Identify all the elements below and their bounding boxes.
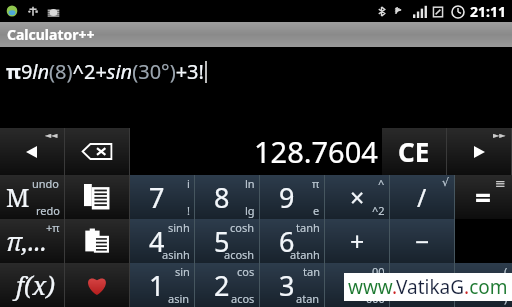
staticText: e (313, 203, 320, 218)
staticText: asin (168, 291, 190, 306)
button[interactable]: − (390, 219, 454, 263)
staticText: ! (187, 203, 190, 218)
button[interactable]: . (390, 263, 454, 307)
button[interactable]: + (325, 219, 389, 263)
button[interactable]: Backspace (65, 128, 129, 175)
staticText: ≡ (495, 176, 506, 191)
staticText: undo (32, 176, 60, 191)
button[interactable]: 4 (130, 219, 194, 263)
staticText: 2 (214, 267, 230, 304)
staticText: Calculator++ (7, 25, 95, 44)
staticText: 3 (279, 267, 295, 304)
staticText: − (415, 224, 430, 258)
staticText: tan (303, 264, 320, 279)
button[interactable]: = (455, 175, 512, 219)
staticText: ►► (493, 131, 506, 140)
button[interactable]: 0 (325, 263, 389, 307)
staticText: 4 (149, 223, 165, 260)
staticText: × (350, 180, 365, 214)
staticText: redo (36, 203, 60, 218)
staticText: 7 (149, 179, 165, 216)
button[interactable]: f(x) (0, 263, 64, 307)
button[interactable]: 3 (260, 263, 324, 307)
button[interactable]: 2 (195, 263, 259, 307)
staticText: π,... (6, 224, 47, 258)
staticText: 21:11 (470, 2, 506, 21)
button[interactable]: Favorites (65, 263, 129, 307)
button[interactable]: 9 (260, 175, 324, 219)
button[interactable]: 7 (130, 175, 194, 219)
staticText: , (447, 264, 450, 279)
staticText: ) (504, 291, 508, 306)
staticText: . (419, 268, 426, 302)
staticText: 8 (214, 179, 230, 216)
staticText: www.VatikaG.com (348, 274, 508, 300)
staticText: 00 (372, 264, 385, 279)
staticText: cos (237, 264, 255, 279)
button[interactable]: π,... (0, 219, 64, 263)
staticText: 9 (279, 179, 295, 216)
staticText: ^ (378, 176, 385, 191)
button[interactable]: 8 (195, 175, 259, 219)
staticText: M (6, 180, 30, 214)
staticText: asinh (162, 247, 190, 262)
staticText: √ (442, 176, 450, 189)
staticText: = (475, 178, 492, 216)
staticText: +π (46, 220, 60, 235)
button[interactable]: 5 (195, 219, 259, 263)
button[interactable]: () (455, 263, 512, 307)
staticText: 000 (366, 291, 385, 306)
staticText: atan (296, 291, 320, 306)
button[interactable]: Move right (447, 128, 511, 175)
staticText: i (187, 176, 190, 191)
staticText: 5 (214, 223, 230, 260)
staticText: / (417, 180, 427, 214)
staticText: () (476, 268, 492, 302)
staticText: CE (398, 134, 430, 169)
staticText: 6 (279, 223, 295, 260)
button[interactable]: Clear entry (382, 128, 446, 175)
button[interactable]: Move left (0, 128, 64, 175)
staticText: ^2 (372, 203, 385, 218)
staticText: 0 (344, 267, 360, 304)
button[interactable]: M (0, 175, 64, 219)
staticText: lg (245, 203, 255, 218)
staticText: tanh (296, 220, 320, 235)
staticText: 128.7604 (254, 132, 378, 171)
staticText: cosh (230, 220, 255, 235)
button[interactable]: Paste history (65, 175, 129, 219)
staticText: f(x) (16, 268, 55, 302)
staticText: acosh (224, 247, 255, 262)
button[interactable]: / (390, 175, 454, 219)
button[interactable]: × (325, 175, 389, 219)
button[interactable]: 1 (130, 263, 194, 307)
staticText: ◄◄ (45, 131, 58, 140)
staticText: 1 (149, 267, 165, 304)
staticText: π9ln(8)^2+sin(30°)+3! (6, 58, 204, 85)
staticText: + (350, 224, 365, 258)
staticText: atanh (290, 247, 320, 262)
staticText: sin (175, 264, 190, 279)
button[interactable]: 6 (260, 219, 324, 263)
staticText: ( (504, 264, 508, 279)
button[interactable]: 128.7604 (130, 128, 382, 175)
staticText: ln (245, 176, 255, 191)
staticText: acos (231, 291, 255, 306)
button[interactable]: Copy (65, 219, 129, 263)
staticText: sinh (168, 220, 190, 235)
staticText: π (312, 176, 320, 191)
